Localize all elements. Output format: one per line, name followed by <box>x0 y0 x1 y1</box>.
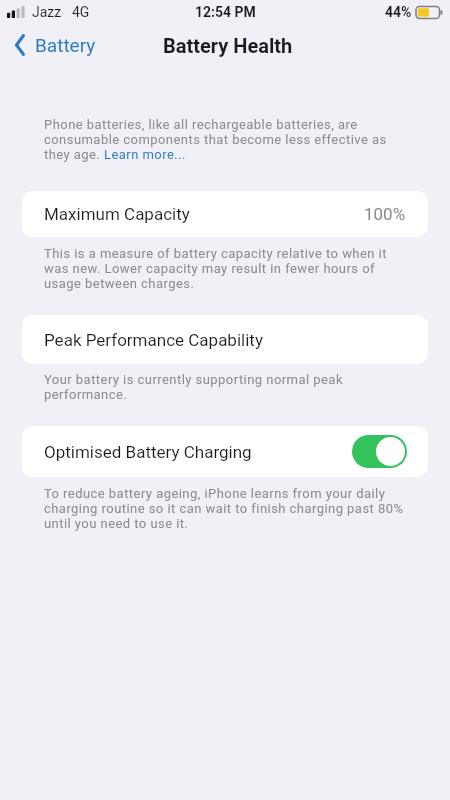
staticText: 4G <box>72 4 90 20</box>
button[interactable]: Battery <box>13 30 98 60</box>
staticText: Maximum Capacity <box>44 204 190 224</box>
staticText: Battery Health <box>163 34 293 57</box>
button[interactable]: Maximum Capacity <box>22 191 428 237</box>
button[interactable]: Peak Performance Capability <box>22 315 428 364</box>
button[interactable]: Learn more <box>104 147 185 163</box>
staticText: 12:54 PM <box>195 4 256 20</box>
button[interactable]: Optimised Battery Charging toggle <box>352 435 407 468</box>
button[interactable]: Optimised Battery Charging <box>22 426 428 477</box>
staticText: 44% <box>385 4 412 20</box>
staticText: Phone batteries, like all rechargeable b… <box>44 117 410 162</box>
staticText: To reduce battery ageing, iPhone learns … <box>44 486 410 531</box>
staticText: This is a measure of battery capacity re… <box>44 246 410 291</box>
staticText: Peak Performance Capability <box>44 330 263 350</box>
staticText: Jazz <box>32 4 62 20</box>
staticText: 100% <box>364 204 406 224</box>
staticText: Your battery is currently supporting nor… <box>44 372 410 402</box>
staticText: Battery <box>35 34 96 56</box>
staticText: Optimised Battery Charging <box>44 442 252 462</box>
